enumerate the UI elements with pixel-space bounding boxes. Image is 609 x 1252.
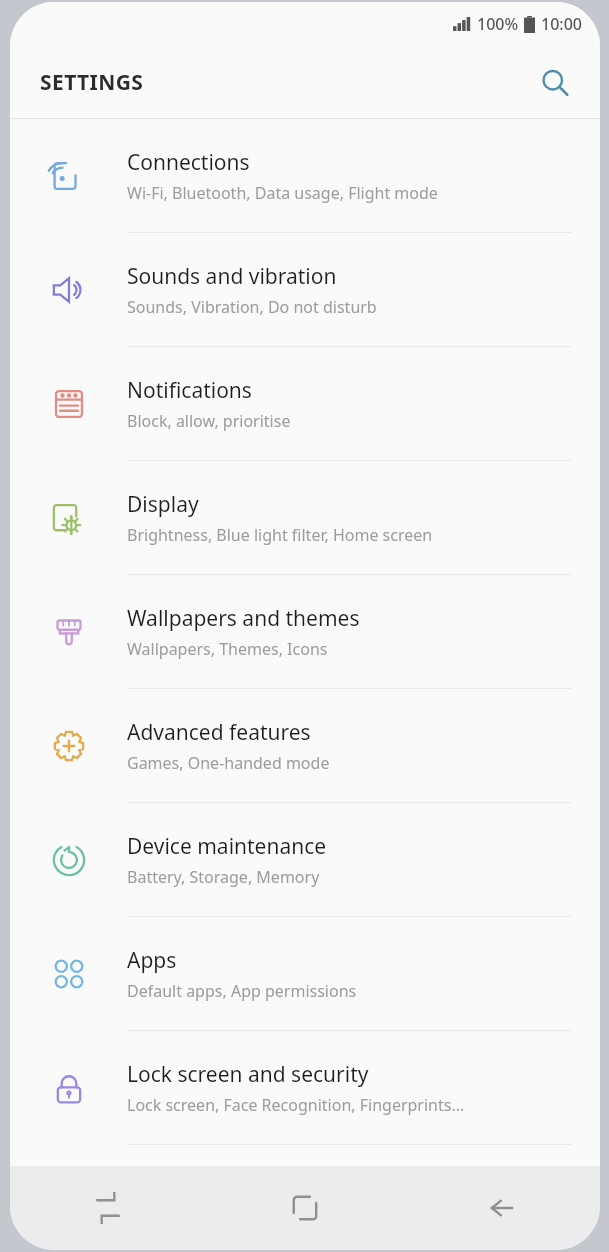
button[interactable]: Device maintenance	[10, 803, 600, 916]
staticText: 100%	[477, 13, 519, 35]
button[interactable]: Apps	[10, 917, 600, 1030]
staticText: Sounds, Vibration, Do not disturb	[127, 296, 377, 318]
staticText: Connections	[127, 148, 250, 177]
button[interactable]: Wallpapers and themes	[10, 575, 600, 688]
staticText: Battery, Storage, Memory	[127, 866, 320, 888]
staticText: Lock screen and security	[127, 1060, 369, 1089]
button[interactable]: Back	[403, 1166, 600, 1250]
staticText: Brightness, Blue light filter, Home scre…	[127, 524, 433, 546]
staticText: Device maintenance	[127, 832, 327, 861]
button[interactable]: Display	[10, 461, 600, 574]
staticText: Wallpapers and themes	[127, 604, 360, 633]
button[interactable]: Home	[206, 1166, 403, 1250]
staticText: Apps	[127, 946, 177, 975]
button[interactable]: Sounds and vibration	[10, 233, 600, 346]
staticText: Display	[127, 490, 199, 519]
staticText: Block, allow, prioritise	[127, 410, 291, 432]
staticText: Advanced features	[127, 718, 311, 747]
staticText: Lock screen, Face Recognition, Fingerpri…	[127, 1094, 465, 1116]
staticText: Games, One-handed mode	[127, 752, 330, 774]
button[interactable]: Notifications	[10, 347, 600, 460]
button[interactable]: Lock screen and security	[10, 1031, 600, 1144]
staticText: Default apps, App permissions	[127, 980, 357, 1002]
button[interactable]: Search	[532, 60, 578, 106]
button[interactable]: Connections	[10, 119, 600, 232]
staticText: Wallpapers, Themes, Icons	[127, 638, 328, 660]
staticText: Notifications	[127, 376, 252, 405]
staticText: 10:00	[541, 13, 582, 35]
staticText: SETTINGS	[40, 68, 144, 97]
staticText: Sounds and vibration	[127, 262, 337, 291]
button[interactable]: Recent apps	[10, 1166, 206, 1250]
staticText: Wi-Fi, Bluetooth, Data usage, Flight mod…	[127, 182, 438, 204]
button[interactable]: Advanced features	[10, 689, 600, 802]
